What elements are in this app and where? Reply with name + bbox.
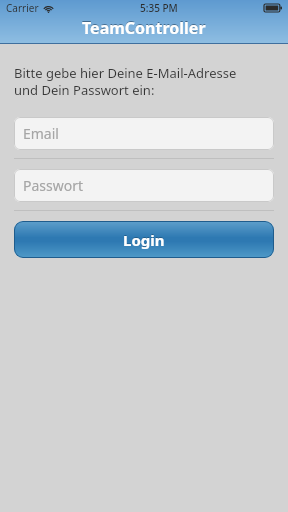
staticText: TeamController <box>82 17 206 39</box>
button[interactable]: Email <box>14 117 274 150</box>
button[interactable]: Login <box>14 221 274 258</box>
staticText: Bitte gebe hier Deine E-Mail-Adresse und… <box>14 64 237 99</box>
staticText: Passwort <box>23 176 84 195</box>
staticText: Email <box>23 124 59 143</box>
staticText: Carrier <box>6 1 39 15</box>
button[interactable]: Passwort <box>14 169 274 202</box>
staticText: 5:35 PM <box>140 1 178 15</box>
staticText: Login <box>123 230 165 250</box>
